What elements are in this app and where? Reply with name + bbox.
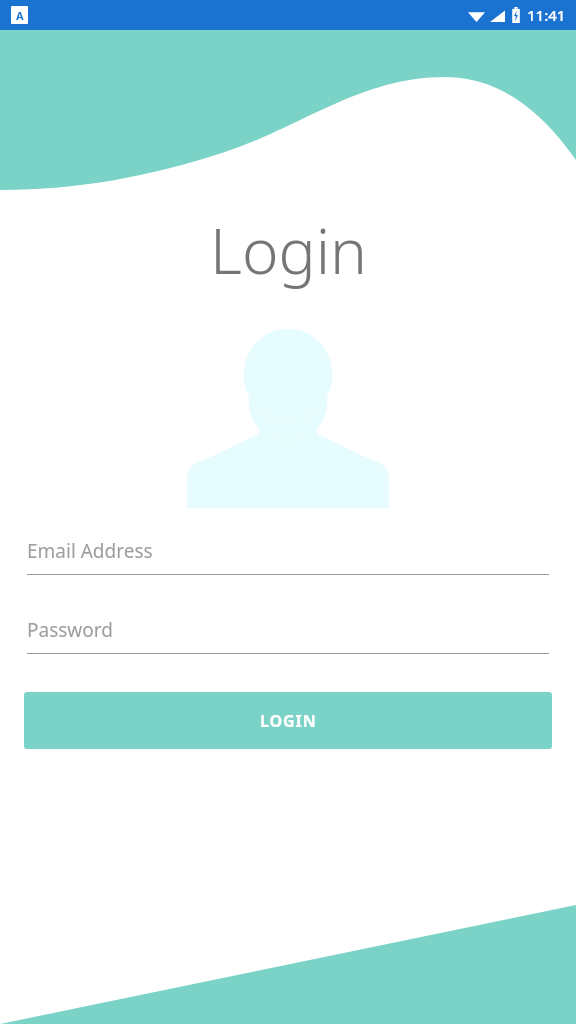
button[interactable]: Email Address: [27, 538, 549, 575]
staticText: A: [16, 8, 24, 23]
staticText: LOGIN: [260, 710, 317, 732]
button[interactable]: LOGIN: [24, 692, 552, 749]
button[interactable]: Password: [27, 617, 549, 654]
staticText: Login: [210, 208, 367, 292]
staticText: 11:41: [527, 5, 566, 25]
staticText: Password: [27, 617, 113, 643]
staticText: Email Address: [27, 538, 153, 564]
